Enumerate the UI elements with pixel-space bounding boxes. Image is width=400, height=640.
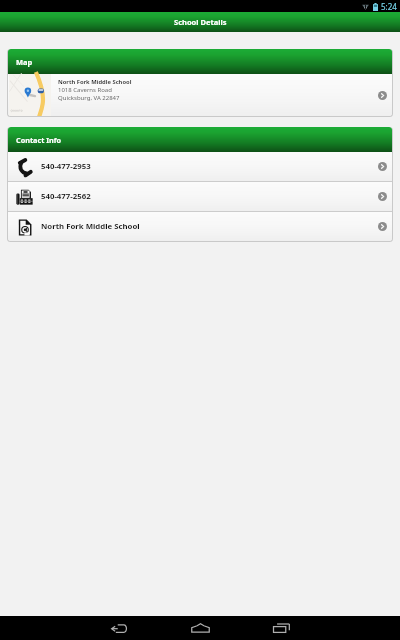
staticText: North Fork Middle School bbox=[58, 78, 132, 86]
button[interactable]: Back bbox=[89, 616, 149, 640]
staticText: 540-477-2953 bbox=[41, 161, 91, 172]
staticText: Contact Info bbox=[16, 135, 62, 145]
staticText: 1018 Caverns Road bbox=[58, 86, 112, 94]
button[interactable]: 540-477-2562 bbox=[8, 182, 392, 211]
button[interactable]: Home bbox=[170, 616, 230, 640]
staticText: Quicksburg, VA 22847 bbox=[58, 94, 120, 102]
button[interactable]: North Fork Middle School bbox=[8, 74, 392, 116]
staticText: 540-477-2562 bbox=[41, 191, 91, 202]
staticText: North Fork Middle School bbox=[41, 221, 140, 232]
button[interactable]: Recent apps bbox=[251, 616, 311, 640]
button[interactable]: North Fork Middle School bbox=[8, 212, 392, 241]
staticText: School Details bbox=[174, 17, 227, 27]
button[interactable]: 540-477-2953 bbox=[8, 152, 392, 181]
staticText: Map bbox=[16, 57, 33, 67]
staticText: 5:24 bbox=[381, 1, 397, 12]
